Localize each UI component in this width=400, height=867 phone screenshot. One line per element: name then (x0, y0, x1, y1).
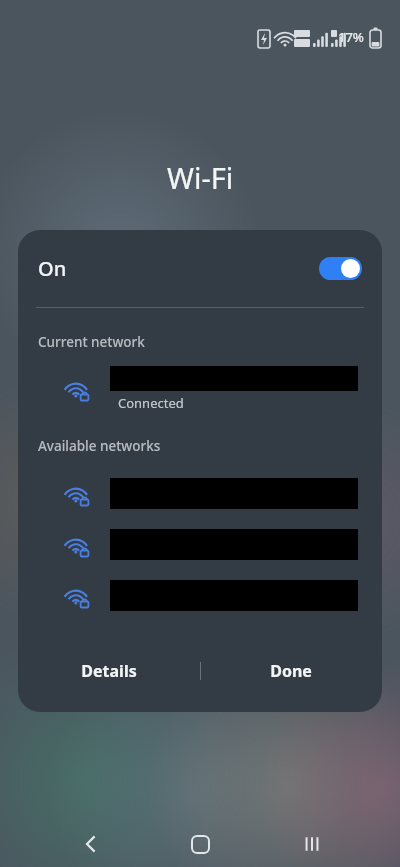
staticText: 17% (338, 28, 364, 46)
button[interactable] (18, 570, 382, 621)
staticText: Connected (118, 394, 184, 412)
staticText: Details (81, 660, 137, 682)
button[interactable]: Wi-Fi toggle, on (319, 257, 362, 280)
staticText: Wi-Fi (167, 158, 234, 197)
staticText: Done (270, 660, 312, 682)
button[interactable]: Recent apps (288, 821, 334, 867)
staticText: On (38, 255, 67, 282)
button[interactable]: Details (18, 643, 200, 699)
staticText: Current network (38, 333, 145, 351)
button[interactable]: Back (68, 821, 114, 867)
button[interactable]: Connected (18, 363, 382, 415)
staticText: Available networks (38, 437, 161, 455)
button[interactable]: Home (177, 821, 223, 867)
button[interactable]: On (18, 230, 382, 307)
button[interactable]: Done (200, 643, 382, 699)
button[interactable] (18, 519, 382, 570)
button[interactable] (18, 468, 382, 519)
